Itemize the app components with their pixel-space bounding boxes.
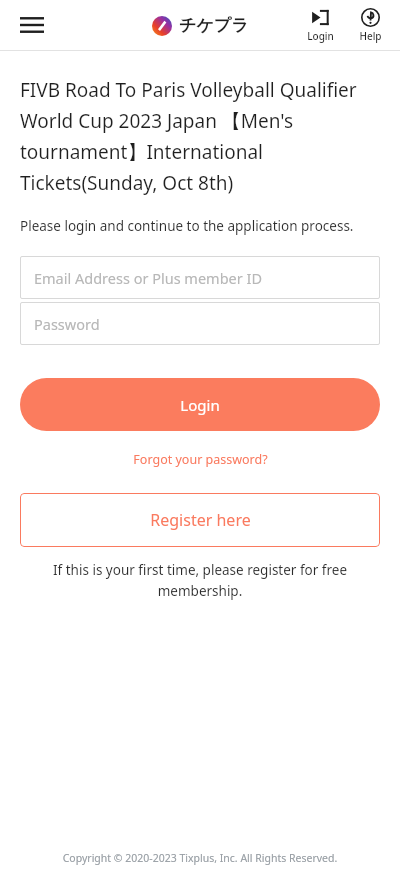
staticText: Password (34, 314, 100, 334)
staticText: Please login and continue to the applica… (20, 217, 380, 235)
staticText: Register here (150, 509, 251, 531)
button[interactable]: Login (298, 4, 342, 47)
button[interactable]: Password (20, 302, 380, 345)
staticText: Forgot your password? (133, 451, 268, 468)
staticText: Email Address or Plus member ID (34, 268, 263, 288)
staticText: Login (180, 395, 220, 415)
staticText: Help (359, 29, 382, 43)
staticText: If this is your first time, please regis… (33, 561, 367, 600)
staticText: チケプラ (179, 15, 249, 36)
staticText: Login (307, 29, 334, 43)
button[interactable]: Help (348, 4, 392, 47)
button[interactable]: Tixplus home (152, 15, 249, 36)
button[interactable]: Login (20, 378, 380, 431)
button[interactable]: Email Address or Plus member ID (20, 256, 380, 299)
staticText: FIVB Road To Paris Volleyball Qualifier … (20, 77, 380, 195)
button[interactable]: Register here (20, 493, 380, 547)
staticText: Copyright © 2020-2023 Tixplus, Inc. All … (0, 851, 400, 865)
button[interactable]: Menu (12, 5, 52, 45)
button[interactable]: Forgot your password? (0, 451, 400, 468)
